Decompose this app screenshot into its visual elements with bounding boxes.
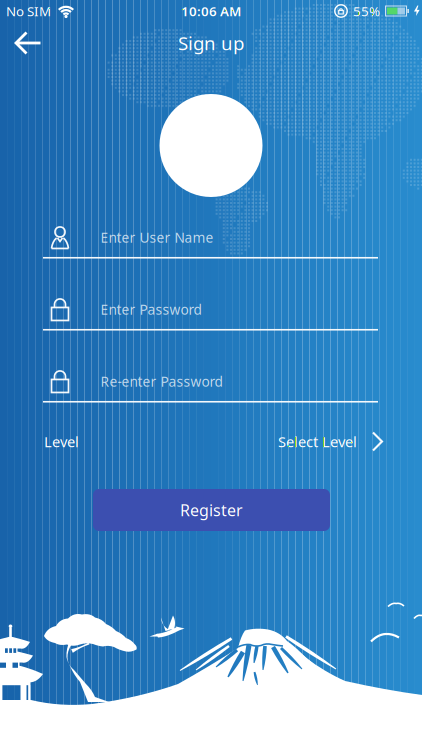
button[interactable]: Level xyxy=(44,424,384,458)
button[interactable]: Register xyxy=(93,489,330,531)
button[interactable]: Enter User Name xyxy=(43,221,378,258)
button[interactable]: Back xyxy=(7,21,51,65)
staticText: Register xyxy=(180,499,243,521)
staticText: Enter Password xyxy=(100,300,201,319)
staticText: Select Level xyxy=(278,431,357,451)
staticText: 10:06 AM xyxy=(181,2,241,20)
button[interactable]: Re-enter Password xyxy=(43,365,378,402)
button[interactable]: Enter Password xyxy=(43,293,378,330)
staticText: Sign up xyxy=(178,30,244,56)
staticText: Enter User Name xyxy=(100,228,213,247)
staticText: Re-enter Password xyxy=(100,372,222,391)
staticText: 55% xyxy=(353,2,380,20)
staticText: Level xyxy=(44,431,79,451)
staticText: No SIM xyxy=(6,2,51,20)
